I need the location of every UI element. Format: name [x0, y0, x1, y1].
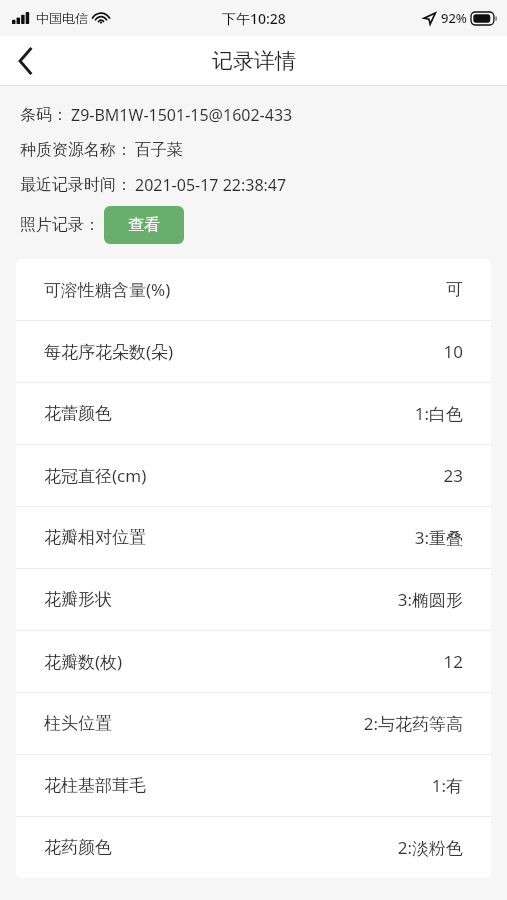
button[interactable]: 花瓣数(枚) [16, 631, 491, 692]
button[interactable]: 花柱基部茸毛 [16, 755, 491, 816]
staticText: 2021-05-17 22:38:47 [135, 174, 287, 196]
staticText: 12 [443, 650, 463, 673]
button[interactable]: 可溶性糖含量(%) [16, 259, 491, 320]
staticText: 柱头位置 [44, 713, 112, 734]
staticText: 花冠直径(cm) [44, 464, 147, 487]
button[interactable]: Back [0, 36, 50, 86]
staticText: 92% [441, 9, 467, 27]
staticText: Z9-BM1W-1501-15@1602-433 [71, 104, 293, 126]
staticText: 种质资源名称： [20, 140, 132, 160]
staticText: 每花序花朵数(朵) [44, 340, 174, 363]
button[interactable]: 花瓣形状 [16, 569, 491, 630]
staticText: 1:白色 [414, 402, 463, 425]
staticText: 2:淡粉色 [397, 836, 463, 859]
button[interactable]: 每花序花朵数(朵) [16, 321, 491, 382]
staticText: 可 [446, 279, 463, 300]
staticText: 中国电信 [36, 10, 88, 26]
staticText: 2:与花药等高 [363, 712, 463, 735]
button[interactable]: 柱头位置 [16, 693, 491, 754]
button[interactable]: 花冠直径(cm) [16, 445, 491, 506]
staticText: 花瓣形状 [44, 589, 112, 610]
staticText: 下午10:28 [222, 9, 286, 28]
button[interactable]: 查看 [104, 206, 184, 244]
button[interactable]: 花药颜色 [16, 817, 491, 878]
staticText: 花瓣数(枚) [44, 650, 123, 673]
button[interactable]: 花蕾颜色 [16, 383, 491, 444]
staticText: 3:椭圆形 [397, 588, 463, 611]
staticText: 花瓣相对位置 [44, 527, 146, 548]
button[interactable]: 花瓣相对位置 [16, 507, 491, 568]
staticText: 百子菜 [135, 140, 183, 160]
staticText: 花柱基部茸毛 [44, 775, 146, 796]
staticText: 花蕾颜色 [44, 403, 112, 424]
staticText: 记录详情 [212, 48, 296, 74]
staticText: 最近记录时间： [20, 175, 132, 195]
staticText: 3:重叠 [414, 526, 463, 549]
staticText: 花药颜色 [44, 837, 112, 858]
staticText: 照片记录： [20, 215, 100, 235]
staticText: 1:有 [431, 774, 463, 797]
staticText: 10 [443, 340, 463, 363]
staticText: 条码： [20, 105, 68, 125]
staticText: 可溶性糖含量(%) [44, 278, 171, 301]
staticText: 23 [443, 464, 463, 487]
staticText: 查看 [128, 215, 160, 235]
